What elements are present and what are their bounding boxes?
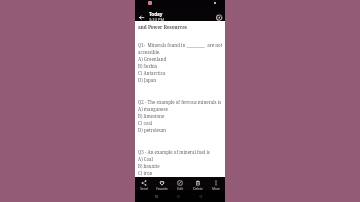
staticText: C) Antarctica	[138, 70, 223, 76]
button[interactable]: Back	[137, 13, 145, 21]
staticText: D) petroleum	[138, 127, 223, 133]
staticText: C) iron	[138, 170, 223, 176]
staticText: B) bauxite	[138, 163, 223, 169]
staticText: Favorite	[156, 187, 168, 190]
staticText: Q2 - The example of ferrous minerals is	[138, 99, 223, 105]
staticText: Q3 - An example of mineral fuel is	[138, 149, 223, 155]
staticText: A) manganese	[138, 106, 223, 112]
button[interactable]: More	[207, 177, 225, 190]
button[interactable]: Edit	[171, 177, 189, 190]
staticText: Today	[149, 11, 163, 17]
staticText: accessible.	[138, 49, 223, 55]
staticText: Q1- Minerals found in _________ are not	[138, 42, 223, 48]
button[interactable]: Delete	[189, 177, 207, 190]
staticText: B) Serbia	[138, 63, 223, 69]
button[interactable]: Send	[135, 177, 153, 190]
staticText: A) Coal	[138, 156, 223, 162]
button[interactable]: Options	[215, 13, 223, 21]
staticText: D) Japan	[138, 77, 223, 83]
button[interactable]: Home	[174, 192, 182, 200]
staticText: More	[212, 187, 220, 190]
staticText: B) limestone	[138, 113, 223, 119]
staticText: C) coal	[138, 120, 223, 126]
button[interactable]: Recents	[152, 192, 160, 200]
staticText: 3:33 PM	[149, 17, 165, 22]
staticText: Delete	[193, 187, 203, 190]
button[interactable]: Favorite	[153, 177, 171, 190]
button[interactable]: Back	[196, 192, 204, 200]
staticText: Edit	[177, 187, 183, 190]
staticText: and Power Resources	[138, 24, 188, 30]
staticText: Send	[140, 187, 148, 190]
staticText: A) Greenland	[138, 56, 223, 62]
